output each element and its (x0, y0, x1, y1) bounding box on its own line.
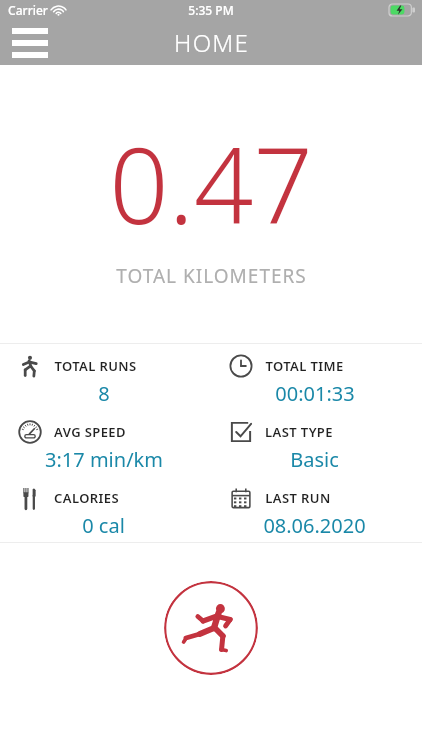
staticText: 08.06.2020 (263, 512, 366, 539)
button[interactable]: Total time (211, 344, 422, 407)
button[interactable]: Last run (211, 476, 422, 539)
staticText: Carrier (8, 2, 48, 18)
staticText: 5:35 PM (188, 2, 234, 18)
staticText: TOTAL RUNS (54, 357, 137, 375)
staticText: AVG SPEED (54, 423, 126, 441)
button[interactable]: Menu (10, 23, 50, 63)
staticText: 3:17 min/km (45, 446, 163, 473)
staticText: TOTAL KILOMETERS (116, 263, 307, 289)
staticText: LAST TYPE (265, 423, 333, 441)
staticText: 0 cal (82, 512, 125, 539)
staticText: HOME (174, 26, 249, 59)
staticText: 8 (98, 380, 110, 407)
staticText: 00:01:33 (275, 380, 355, 407)
button[interactable]: Last type (211, 410, 422, 473)
button[interactable]: Calories (0, 476, 211, 539)
button[interactable]: Start run (164, 581, 258, 675)
staticText: TOTAL TIME (265, 357, 344, 375)
button[interactable]: Total runs (0, 344, 211, 407)
button[interactable]: Average speed (0, 410, 211, 473)
staticText: CALORIES (54, 489, 119, 507)
staticText: LAST RUN (265, 489, 331, 507)
staticText: 0.47 (109, 113, 313, 255)
staticText: Basic (290, 446, 339, 473)
